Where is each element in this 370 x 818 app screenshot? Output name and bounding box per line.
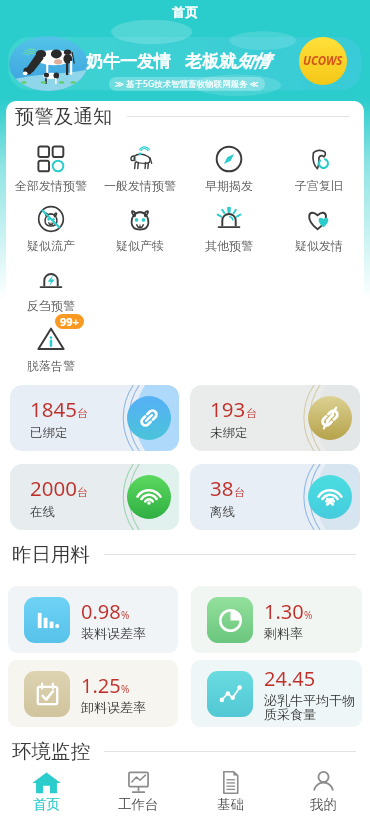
staticText: 剩料率	[264, 625, 303, 641]
staticText: 193	[210, 395, 246, 423]
button[interactable]: 一般发情预警	[95, 133, 184, 193]
button[interactable]: 1845	[10, 385, 179, 451]
staticText: 昨日用料	[12, 542, 90, 567]
staticText: 台	[77, 406, 88, 420]
staticText: 疑似发情	[295, 238, 343, 253]
staticText: ≫ 基于5G技术智慧畜牧物联网服务 ≪	[115, 78, 259, 90]
staticText: 24.45	[264, 665, 316, 692]
staticText: 我的	[310, 796, 337, 813]
button[interactable]: 基础	[184, 767, 277, 818]
button[interactable]: 奶牛一发情	[0, 24, 370, 96]
staticText: 子宫复旧	[295, 178, 343, 193]
button[interactable]: 99+	[6, 313, 95, 373]
staticText: 脱落告警	[27, 358, 75, 373]
staticText: 离线	[210, 504, 235, 520]
staticText: 台	[234, 485, 245, 499]
staticText: 基础	[217, 796, 244, 813]
staticText: %	[121, 608, 130, 622]
staticText: 预警及通知	[15, 104, 113, 129]
staticText: 1.30	[264, 598, 304, 625]
button[interactable]: 全部发情预警	[6, 133, 95, 193]
staticText: 1845	[30, 395, 77, 423]
staticText: 首页	[172, 4, 198, 20]
staticText: 在线	[30, 504, 55, 520]
button[interactable]: 子宫复旧	[274, 133, 364, 193]
staticText: 知情	[236, 51, 270, 72]
button[interactable]: 0.98	[8, 586, 178, 653]
staticText: 一般发情预警	[104, 178, 176, 193]
staticText: 奶牛一发情	[86, 51, 171, 72]
staticText: 0.98	[81, 598, 121, 625]
staticText: 首页	[33, 796, 60, 813]
button[interactable]: 2000	[10, 464, 179, 530]
staticText: %	[121, 682, 130, 696]
staticText: 疑似产犊	[116, 238, 164, 253]
button[interactable]: 疑似流产	[6, 193, 95, 253]
staticText: 2000	[30, 474, 77, 502]
staticText: 装料误差率	[81, 625, 146, 641]
staticText: 其他预警	[205, 238, 253, 253]
staticText: 99+	[60, 314, 79, 329]
button[interactable]: 1.25	[8, 660, 178, 727]
button[interactable]: 疑似发情	[274, 193, 364, 253]
staticText: 台	[77, 485, 88, 499]
staticText: 反刍预警	[27, 298, 75, 313]
staticText: 已绑定	[30, 425, 68, 441]
staticText: UCOWS	[303, 53, 343, 69]
staticText: 卸料误差率	[81, 699, 146, 715]
button[interactable]: 反刍预警	[6, 253, 95, 313]
button[interactable]: 193	[190, 385, 360, 451]
staticText: 早期揭发	[205, 178, 253, 193]
staticText: %	[304, 608, 313, 622]
button[interactable]: 首页	[0, 767, 92, 818]
button[interactable]: 24.45	[191, 660, 362, 727]
staticText: 未绑定	[210, 425, 248, 441]
staticText: 台	[246, 406, 257, 420]
staticText: 38	[210, 474, 234, 502]
button[interactable]: 工作台	[92, 767, 184, 818]
button[interactable]: 38	[190, 464, 360, 530]
staticText: 1.25	[81, 672, 121, 699]
staticText: 老板就	[185, 51, 236, 72]
button[interactable]: 1.30	[191, 586, 362, 653]
staticText: 环境监控	[12, 739, 90, 764]
staticText: 疑似流产	[27, 238, 75, 253]
staticText: 工作台	[118, 796, 159, 813]
button[interactable]: 疑似产犊	[95, 193, 184, 253]
staticText: 泌乳牛平均干物 质采食量	[264, 692, 355, 723]
button[interactable]: 我的	[277, 767, 370, 818]
button[interactable]: 早期揭发	[184, 133, 274, 193]
staticText: 全部发情预警	[15, 178, 87, 193]
button[interactable]: 其他预警	[184, 193, 274, 253]
